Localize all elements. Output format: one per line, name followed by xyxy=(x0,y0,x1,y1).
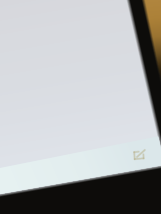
button[interactable]: Compose xyxy=(0,0,161,214)
